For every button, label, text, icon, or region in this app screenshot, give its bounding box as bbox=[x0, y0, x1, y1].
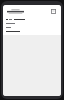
button[interactable] bbox=[3, 17, 61, 35]
button[interactable]: Open menu bbox=[49, 7, 57, 15]
button[interactable]: Home bbox=[7, 9, 24, 14]
